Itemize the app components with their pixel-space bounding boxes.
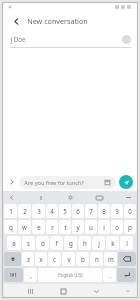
staticText: q (9, 223, 13, 231)
staticText: 5 (63, 207, 67, 215)
button[interactable]: v (62, 252, 75, 266)
staticText: 8 (102, 207, 106, 215)
staticText: 0 (128, 207, 132, 215)
staticText: English (US) (58, 272, 83, 278)
button[interactable]: Are you free for lunch? (19, 176, 116, 189)
button[interactable]: Settings (66, 193, 75, 202)
button[interactable]: c (48, 252, 61, 266)
button[interactable]: Home (57, 285, 69, 297)
staticText: !#1 (10, 272, 17, 278)
button[interactable]: 9 (111, 204, 123, 218)
staticText: w (22, 223, 27, 231)
button[interactable]: e (32, 220, 45, 234)
button[interactable]: x (35, 252, 47, 266)
staticText: d (41, 239, 45, 247)
staticText: u (89, 223, 93, 231)
staticText: a (12, 239, 16, 247)
button[interactable]: q (4, 220, 17, 234)
button[interactable]: j (92, 236, 105, 250)
button[interactable]: Symbols (4, 268, 23, 282)
button[interactable]: More (124, 193, 133, 202)
button[interactable]: w (18, 220, 31, 234)
button[interactable]: 6 (72, 204, 84, 218)
staticText: c (53, 255, 56, 263)
button[interactable]: l (120, 236, 133, 250)
button[interactable]: a (7, 236, 21, 250)
staticText: Are you free for lunch? (24, 179, 84, 187)
button[interactable]: z (22, 252, 34, 266)
staticText: p (128, 223, 132, 231)
button[interactable]: t (59, 220, 71, 234)
staticText: e (37, 223, 41, 231)
button[interactable]: 5 (59, 204, 71, 218)
staticText: i (103, 223, 105, 231)
staticText: h (83, 239, 87, 247)
staticText: y (76, 223, 80, 231)
button[interactable]: Hide keyboard (123, 286, 133, 296)
button[interactable]: Recents (24, 285, 36, 297)
staticText: 4 (50, 207, 54, 215)
button[interactable]: n (90, 252, 103, 266)
staticText: 2 (23, 207, 27, 215)
staticText: New conversation (27, 16, 88, 26)
button[interactable]: Enter (117, 268, 136, 282)
button[interactable]: Expand options (7, 177, 17, 187)
other: Attach (104, 179, 111, 186)
button[interactable]: y (72, 220, 84, 234)
button[interactable]: Previous (7, 193, 16, 202)
button[interactable]: English (US) (38, 268, 102, 282)
button[interactable]: m (104, 252, 117, 266)
staticText: 9 (115, 207, 119, 215)
button[interactable]: g (64, 236, 77, 250)
staticText: x (39, 255, 43, 263)
button[interactable]: b (76, 252, 89, 266)
button[interactable]: . (103, 268, 116, 282)
staticText: 3 (37, 207, 41, 215)
button[interactable]: Shift (4, 252, 21, 266)
button[interactable]: i (98, 220, 110, 234)
staticText: f (55, 239, 58, 247)
button[interactable]: 3 (32, 204, 45, 218)
staticText: r (51, 223, 54, 231)
button[interactable]: p (124, 220, 136, 234)
button[interactable]: 2 (18, 204, 31, 218)
button[interactable]: u (85, 220, 97, 234)
staticText: t (64, 223, 67, 231)
staticText: J Doe (10, 35, 26, 43)
button[interactable]: Keyboard mode (95, 193, 104, 202)
staticText: k (111, 239, 115, 247)
staticText: b (81, 255, 85, 263)
staticText: m (108, 255, 114, 263)
staticText: o (115, 223, 119, 231)
button[interactable]: 7 (85, 204, 97, 218)
button[interactable]: o (111, 220, 123, 234)
button[interactable]: 1 (4, 204, 17, 218)
button[interactable]: f (50, 236, 63, 250)
button[interactable]: Backspace (118, 252, 136, 266)
button[interactable]: d (36, 236, 49, 250)
button[interactable]: J Doe (3, 31, 137, 47)
staticText: 6 (76, 207, 80, 215)
staticText: 1 (9, 207, 13, 215)
button[interactable]: 8 (98, 204, 110, 218)
button[interactable]: 4 (46, 204, 58, 218)
button[interactable]: , (24, 268, 37, 282)
staticText: j (98, 239, 100, 247)
staticText: , (30, 271, 32, 279)
button[interactable]: Send (119, 175, 133, 189)
button[interactable]: Add recipient (122, 35, 131, 44)
button[interactable]: s (22, 236, 35, 250)
staticText: l (126, 239, 128, 247)
button[interactable]: h (78, 236, 91, 250)
button[interactable]: 0 (124, 204, 136, 218)
staticText: z (27, 255, 30, 263)
staticText: . (109, 271, 111, 279)
staticText: s (27, 239, 30, 247)
button[interactable]: Sticker (36, 193, 45, 202)
button[interactable]: Back (90, 285, 102, 297)
button[interactable]: k (106, 236, 119, 250)
button[interactable]: Back (9, 14, 23, 28)
staticText: 7 (89, 207, 93, 215)
button[interactable]: r (46, 220, 58, 234)
staticText: v (67, 255, 71, 263)
